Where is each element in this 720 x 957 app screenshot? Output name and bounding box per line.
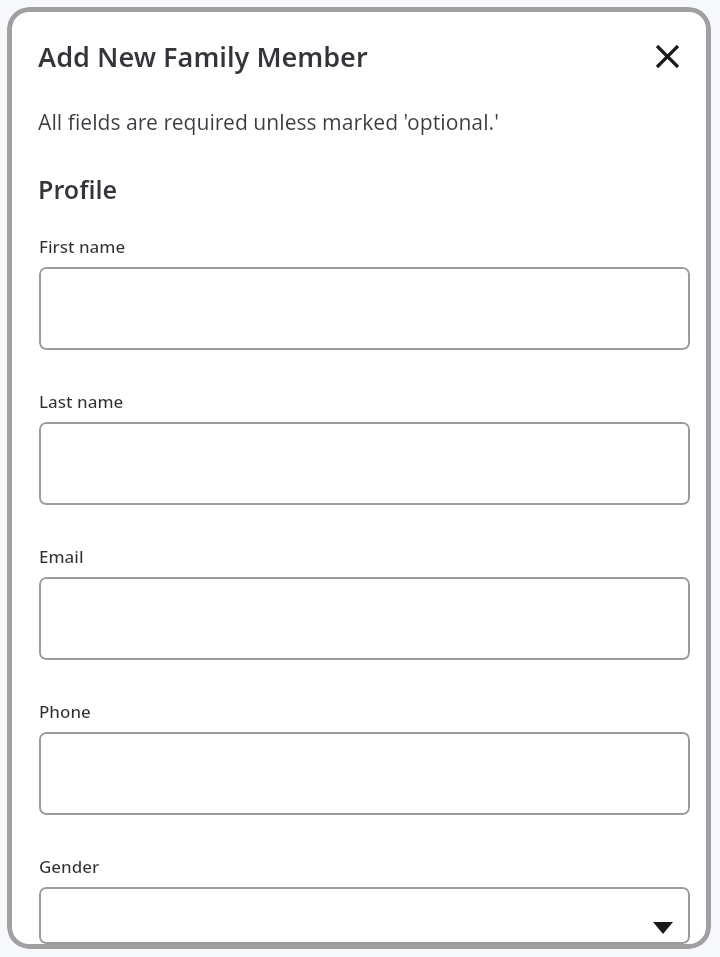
staticText: All fields are required unless marked 'o… <box>38 108 499 137</box>
button[interactable]: Close <box>643 32 691 80</box>
staticText: Profile <box>38 172 118 206</box>
button[interactable]: Gender <box>39 887 690 944</box>
button[interactable]: Email <box>39 577 690 660</box>
staticText: Gender <box>39 855 100 878</box>
staticText: Add New Family Member <box>38 38 368 75</box>
staticText: Phone <box>39 700 91 723</box>
staticText: First name <box>39 235 126 258</box>
button[interactable]: Phone <box>39 732 690 815</box>
button[interactable]: First name <box>39 267 690 350</box>
staticText: Email <box>39 545 84 568</box>
staticText: Last name <box>39 390 124 413</box>
button[interactable]: Last name <box>39 422 690 505</box>
